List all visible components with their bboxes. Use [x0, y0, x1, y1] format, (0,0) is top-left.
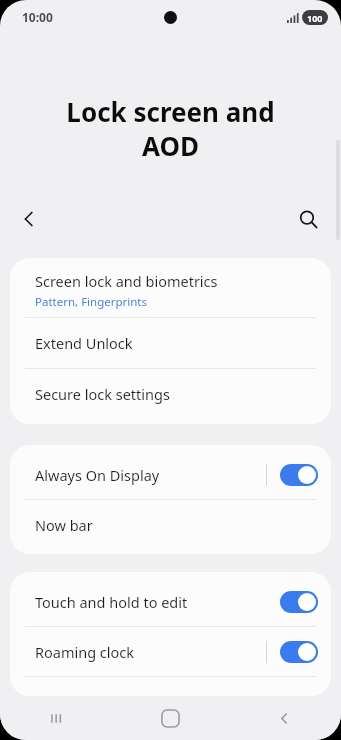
button[interactable]: Back — [12, 202, 46, 236]
button[interactable]: Always On Display — [280, 464, 318, 486]
button[interactable]: Touch and hold to edit — [280, 591, 318, 613]
staticText: Now bar — [35, 515, 93, 535]
staticText: Roaming clock — [35, 642, 135, 662]
button[interactable]: Recents — [0, 696, 113, 740]
staticText: Pattern, Fingerprints — [35, 294, 148, 310]
staticText: Always On Display — [35, 465, 160, 485]
staticText: Screen lock and biometrics — [35, 271, 218, 291]
staticText: Extend Unlock — [35, 333, 133, 353]
staticText: Secure lock settings — [35, 384, 170, 404]
button[interactable]: Roaming clock — [280, 641, 318, 663]
button[interactable]: Home — [113, 696, 227, 740]
staticText: Lock screen and AOD — [18, 94, 323, 164]
button[interactable]: Back — [227, 696, 341, 740]
staticText: 10:00 — [22, 9, 53, 25]
staticText: 100 — [307, 12, 323, 24]
button[interactable]: Search — [291, 202, 325, 236]
button[interactable]: Extend Unlock — [10, 318, 331, 368]
button[interactable]: Now bar — [10, 500, 331, 549]
button[interactable]: Touch and hold to edit — [10, 577, 331, 626]
button[interactable]: Always On Display — [10, 450, 331, 499]
button[interactable]: Roaming clock — [10, 627, 331, 676]
staticText: Touch and hold to edit — [35, 592, 188, 612]
button[interactable]: Secure lock settings — [10, 369, 331, 419]
button[interactable]: Screen lock and biometrics — [10, 263, 331, 317]
